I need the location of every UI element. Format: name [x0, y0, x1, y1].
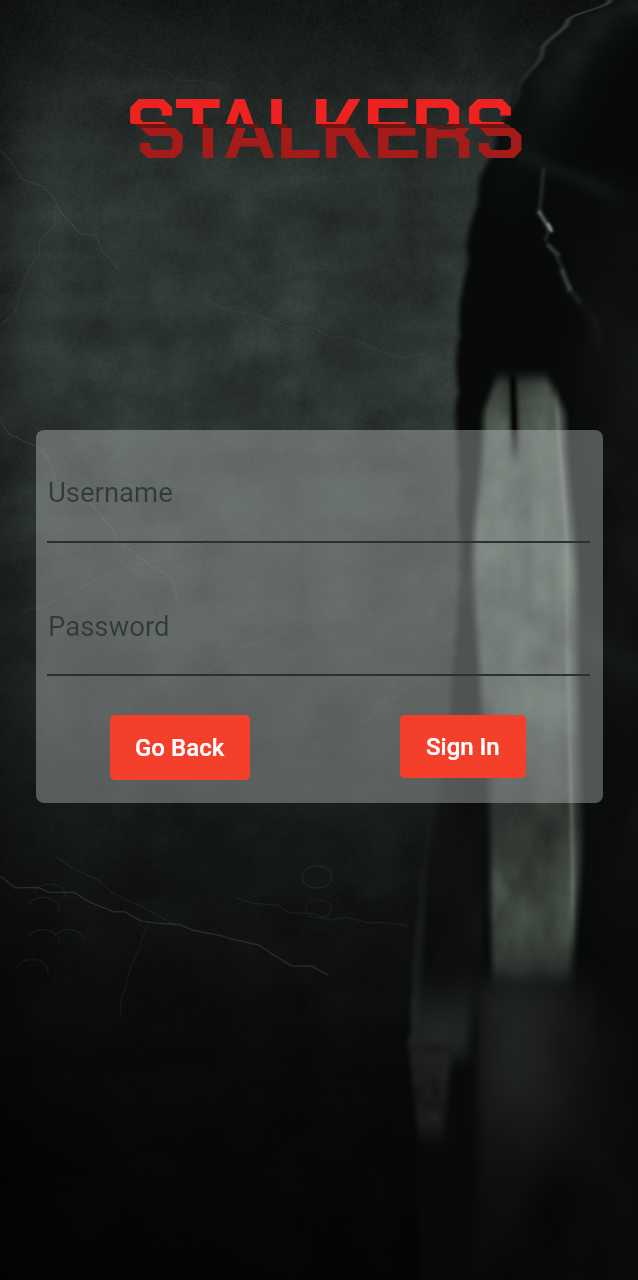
button[interactable]: Go Back [110, 715, 250, 780]
staticText: Go Back [135, 734, 225, 762]
button[interactable]: Username [48, 476, 173, 508]
button[interactable]: Sign In [400, 715, 526, 778]
staticText: Sign In [426, 733, 500, 761]
button[interactable]: Password [48, 610, 170, 642]
